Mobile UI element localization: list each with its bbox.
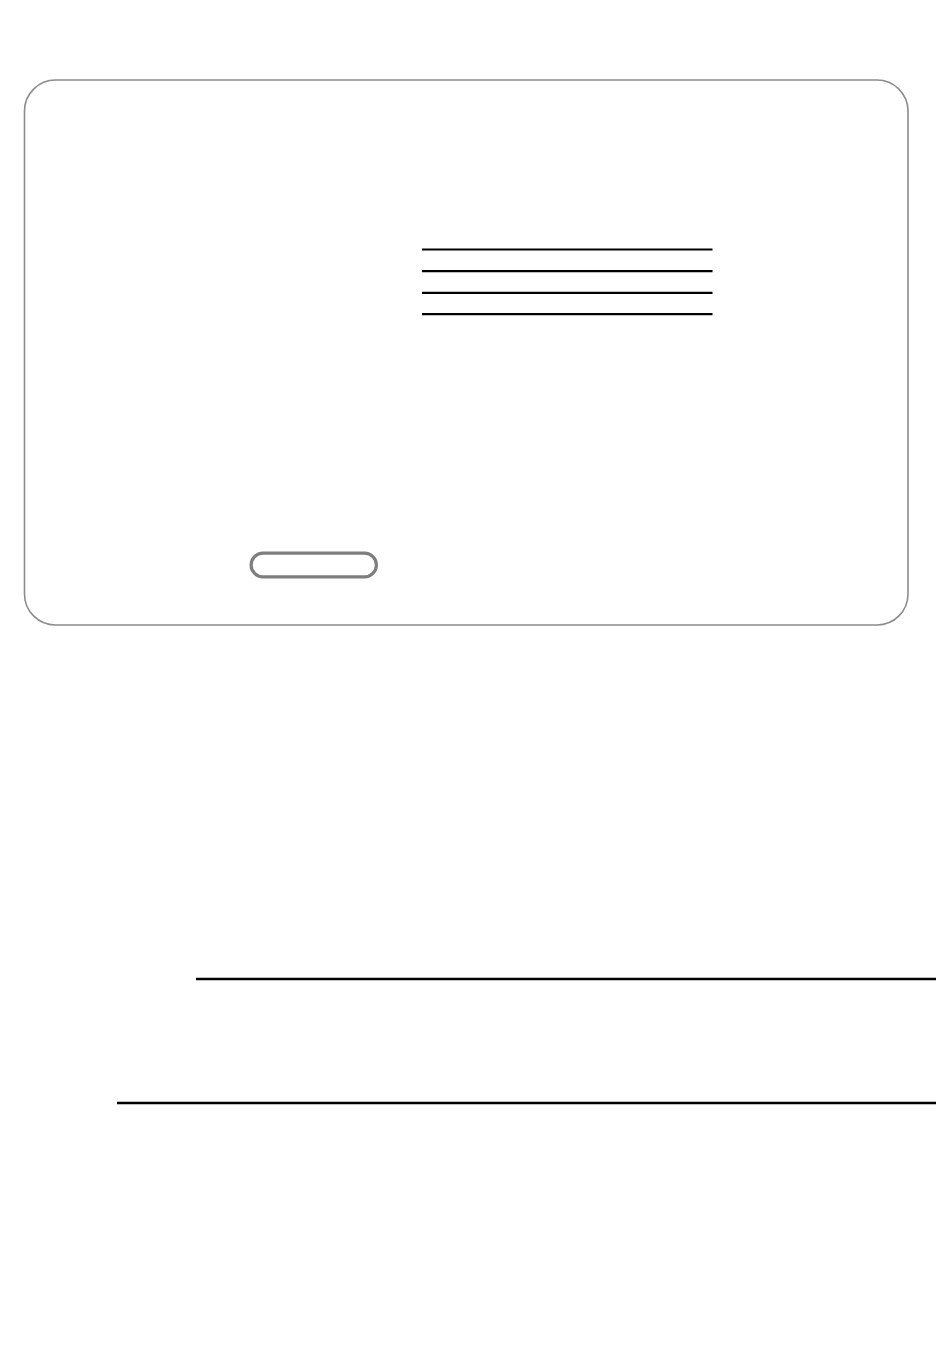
button[interactable]: Action button bbox=[0, 0, 936, 1369]
button[interactable]: Document panel bbox=[0, 0, 936, 1369]
